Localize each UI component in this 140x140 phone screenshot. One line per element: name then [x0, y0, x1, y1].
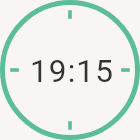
button[interactable]: Watch face showing 19:15 [0, 0, 140, 140]
staticText: 19:15 [30, 53, 114, 90]
